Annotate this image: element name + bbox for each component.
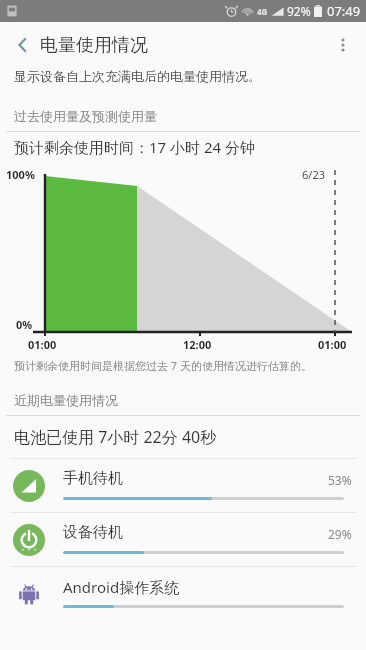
staticText: 4G [257,6,268,17]
button[interactable]: More options [320,22,366,68]
staticText: 0% [16,317,33,332]
staticText: 预计剩余使用时间是根据您过去 7 天的使用情况进行估算的。 [14,358,313,373]
staticText: 100% [6,167,35,182]
staticText: 过去使用量及预测使用量 [14,108,157,124]
staticText: 53% [328,472,352,488]
staticText: 电池已使用 7小时 22分 40秒 [14,426,217,448]
staticText: 01:00 [28,337,57,352]
button[interactable]: 手机待机 [0,459,366,512]
staticText: 电量使用情况 [40,34,148,57]
staticText: Android操作系统 [63,577,180,597]
staticText: 手机待机 [63,469,123,488]
staticText: 29% [328,526,352,542]
staticText: 设备待机 [63,523,123,542]
staticText: 07:49 [327,2,361,20]
button[interactable]: 设备待机 [0,513,366,566]
staticText: 92% [287,3,311,19]
staticText: 近期电量使用情况 [14,392,118,408]
staticText: 显示设备自上次充满电后的电量使用情况。 [14,68,261,84]
staticText: 预计剩余使用时间：17 小时 24 分钟 [14,137,256,157]
staticText: 6/23 [302,167,325,182]
staticText: 01:00 [318,337,347,352]
button[interactable]: Back [0,22,46,68]
staticText: 12:00 [183,337,212,352]
button[interactable]: Android操作系统 [0,567,366,620]
